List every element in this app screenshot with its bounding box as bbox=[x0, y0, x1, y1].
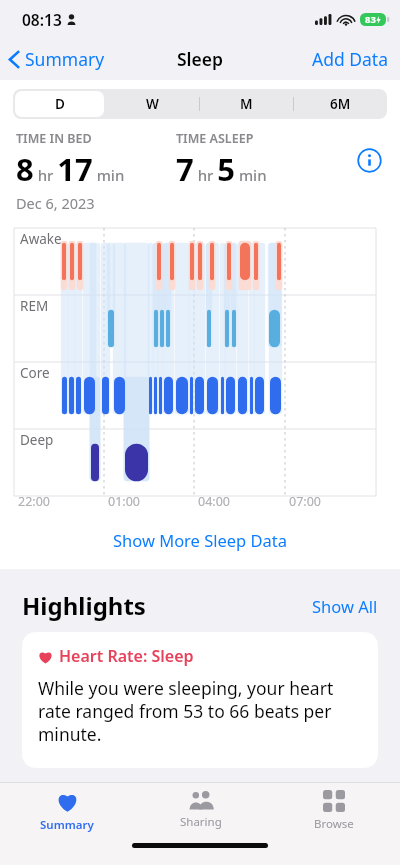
staticText: Show More Sleep Data bbox=[113, 529, 288, 551]
staticText: Sleep bbox=[177, 47, 224, 71]
staticText: Highlights bbox=[22, 589, 146, 622]
button[interactable]: Summary bbox=[0, 783, 134, 839]
button[interactable]: Summary bbox=[0, 43, 113, 75]
staticText: REM bbox=[20, 297, 49, 315]
staticText: Deep bbox=[20, 431, 54, 449]
button[interactable]: 6M bbox=[293, 89, 387, 119]
staticText: TIME IN BED bbox=[16, 130, 92, 147]
staticText: Add Data bbox=[312, 47, 388, 71]
button[interactable]: Heart Rate: Sleep bbox=[22, 632, 378, 768]
staticText: W bbox=[146, 95, 159, 113]
staticText: M bbox=[240, 95, 253, 113]
button[interactable]: Show More Sleep Data bbox=[0, 523, 400, 557]
staticText: 04:00 bbox=[198, 493, 230, 510]
button[interactable]: Show All bbox=[308, 591, 382, 621]
staticText: Browse bbox=[314, 816, 354, 832]
staticText: 8 hr 17 min bbox=[16, 148, 125, 190]
button[interactable]: Browse bbox=[267, 783, 400, 839]
staticText: TIME ASLEEP bbox=[176, 130, 254, 147]
staticText: 07:00 bbox=[289, 493, 321, 510]
staticText: 08:13 bbox=[22, 9, 62, 30]
staticText: Summary bbox=[25, 47, 105, 71]
staticText: 83 bbox=[365, 13, 376, 26]
staticText: Awake bbox=[20, 230, 62, 248]
button[interactable]: Sharing bbox=[134, 783, 267, 839]
button[interactable]: M bbox=[199, 89, 293, 119]
staticText: 22:00 bbox=[18, 493, 50, 510]
button[interactable]: D bbox=[13, 89, 106, 119]
staticText: 6M bbox=[330, 95, 351, 113]
staticText: Show All bbox=[312, 595, 378, 617]
staticText: Summary bbox=[40, 817, 94, 833]
staticText: While you were sleeping, your heart rate… bbox=[38, 676, 362, 746]
staticText: 7 hr 5 min bbox=[176, 148, 267, 190]
staticText: D bbox=[55, 95, 65, 113]
button[interactable]: Add Data bbox=[300, 43, 400, 75]
staticText: Core bbox=[20, 364, 50, 382]
staticText: Dec 6, 2023 bbox=[16, 193, 95, 213]
staticText: 01:00 bbox=[108, 493, 140, 510]
button[interactable]: Information bbox=[352, 143, 386, 177]
staticText: Sharing bbox=[180, 814, 222, 830]
button[interactable]: W bbox=[106, 89, 199, 119]
staticText: Heart Rate: Sleep bbox=[59, 645, 194, 667]
